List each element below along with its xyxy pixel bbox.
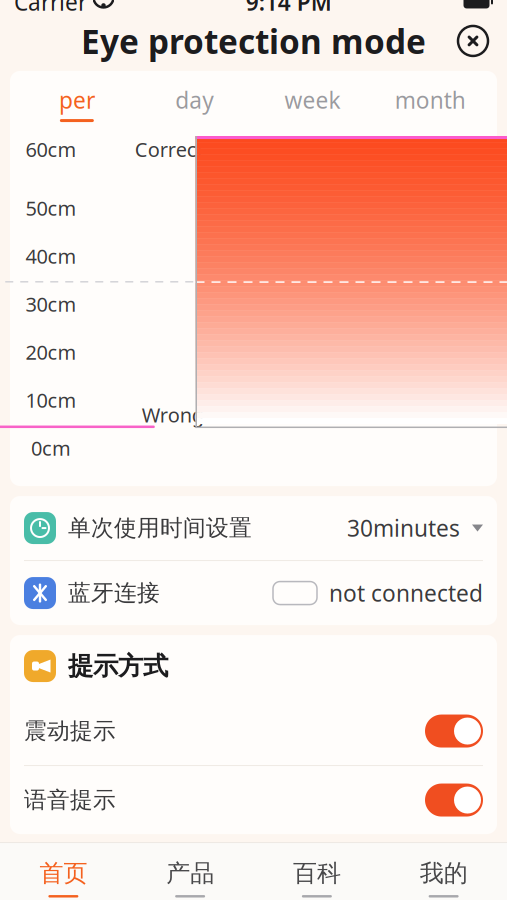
button[interactable]: 震动提示 — [10, 697, 497, 765]
staticText: week — [284, 85, 340, 115]
staticText: month — [395, 85, 466, 115]
staticText: 50cm — [25, 195, 76, 221]
button[interactable]: day — [136, 83, 254, 124]
staticText: 提示方式 — [68, 650, 168, 682]
staticText: 产品 — [166, 859, 214, 888]
button[interactable]: 单次使用时间设置 — [10, 496, 497, 560]
staticText: 语音提示 — [24, 786, 116, 814]
staticText: 震动提示 — [24, 717, 116, 745]
button[interactable]: Close — [451, 19, 495, 63]
button[interactable]: 语音提示 — [10, 766, 497, 834]
staticText: 20cm — [25, 339, 76, 365]
staticText: 我的 — [420, 859, 468, 888]
staticText: 40cm — [25, 243, 76, 269]
button[interactable]: week — [253, 83, 371, 124]
button[interactable]: month — [371, 83, 489, 124]
button[interactable]: 蓝牙连接 — [10, 561, 497, 625]
staticText: 蓝牙连接 — [68, 579, 160, 607]
staticText: 首页 — [39, 859, 87, 888]
staticText: Wrong — [142, 401, 204, 428]
staticText: not connected — [329, 578, 483, 608]
button[interactable]: per — [18, 83, 136, 124]
staticText: 百科 — [293, 859, 341, 888]
staticText: Carrier — [14, 0, 87, 17]
button[interactable]: 百科 — [253, 849, 380, 900]
staticText: day — [175, 85, 214, 115]
staticText: 10cm — [25, 387, 76, 413]
button[interactable]: 产品 — [127, 849, 254, 900]
staticText: 30cm — [25, 291, 76, 317]
button[interactable]: 我的 — [380, 849, 507, 900]
staticText: 9:14 PM — [246, 0, 332, 17]
staticText: per — [59, 85, 95, 115]
staticText: Correct — [135, 136, 204, 163]
staticText: 60cm — [25, 136, 76, 163]
staticText: 30minutes — [347, 513, 460, 543]
button[interactable]: 首页 — [0, 849, 127, 900]
staticText: Eye protection mode — [81, 19, 426, 63]
staticText: 单次使用时间设置 — [68, 514, 252, 542]
staticText: 0cm — [31, 435, 71, 461]
